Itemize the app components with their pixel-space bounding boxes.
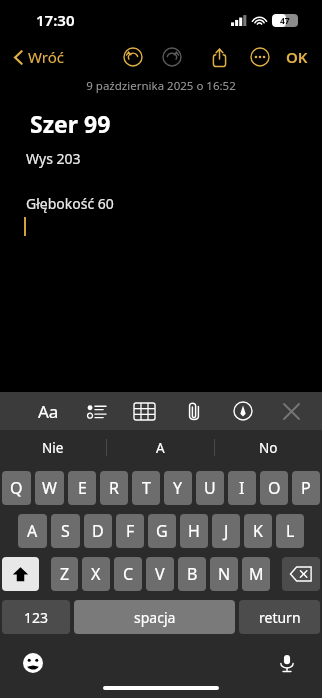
button[interactable]: OK <box>282 42 312 72</box>
button[interactable]: Redo <box>157 42 187 72</box>
staticText: 47 <box>280 15 290 27</box>
staticText: H <box>188 520 200 542</box>
button[interactable]: return <box>239 600 320 634</box>
button[interactable]: 123 <box>2 600 70 634</box>
button[interactable]: Attach <box>169 392 218 430</box>
button[interactable]: No <box>215 430 322 465</box>
button[interactable]: P <box>292 471 320 505</box>
button[interactable]: B <box>178 557 206 591</box>
button[interactable]: Y <box>164 471 192 505</box>
staticText: 9 października 2025 o 16:52 <box>0 78 322 94</box>
staticText: spacja <box>134 608 176 627</box>
staticText: B <box>187 563 198 585</box>
staticText: N <box>218 563 231 585</box>
button[interactable]: G <box>148 514 176 548</box>
staticText: S <box>61 520 70 542</box>
staticText: Szer 99 <box>30 108 111 139</box>
button[interactable]: W <box>35 471 64 505</box>
button[interactable]: Format <box>24 392 72 430</box>
button[interactable]: Shift <box>2 557 39 591</box>
button[interactable]: Table <box>120 392 169 430</box>
staticText: A <box>27 520 38 542</box>
button[interactable]: Close <box>267 392 316 430</box>
staticText: M <box>249 563 264 585</box>
staticText: R <box>109 477 119 499</box>
staticText: G <box>156 520 168 542</box>
staticText: D <box>92 520 104 542</box>
staticText: 123 <box>24 608 49 627</box>
button[interactable]: S <box>51 514 80 548</box>
button[interactable]: I <box>228 471 256 505</box>
button[interactable]: K <box>244 514 272 548</box>
button[interactable]: E <box>68 471 96 505</box>
button[interactable]: Checklist <box>72 392 120 430</box>
button[interactable]: Backspace <box>282 557 320 591</box>
staticText: Wróć <box>28 47 64 67</box>
staticText: O <box>268 477 281 499</box>
button[interactable]: O <box>260 471 288 505</box>
staticText: return <box>259 608 301 627</box>
staticText: Wys 203 <box>26 149 81 168</box>
button[interactable]: A <box>18 514 47 548</box>
staticText: T <box>142 477 151 499</box>
button[interactable]: A <box>107 430 214 465</box>
button[interactable]: H <box>180 514 208 548</box>
button[interactable]: R <box>100 471 128 505</box>
staticText: OK <box>286 47 308 67</box>
staticText: Głębokość 60 <box>26 194 114 213</box>
button[interactable]: Markup <box>218 392 267 430</box>
button[interactable]: L <box>276 514 304 548</box>
staticText: Z <box>60 563 70 585</box>
staticText: U <box>204 477 216 499</box>
button[interactable]: J <box>212 514 240 548</box>
button[interactable]: F <box>116 514 144 548</box>
staticText: Q <box>10 477 23 499</box>
staticText: No <box>259 439 278 457</box>
button[interactable]: Wróć <box>10 43 68 71</box>
staticText: P <box>301 477 311 499</box>
staticText: F <box>126 520 135 542</box>
button[interactable]: N <box>210 557 238 591</box>
button[interactable]: spacja <box>74 600 235 634</box>
staticText: Nie <box>42 439 64 457</box>
staticText: Y <box>173 477 183 499</box>
button[interactable]: Z <box>51 557 78 591</box>
button[interactable]: X <box>82 557 110 591</box>
button[interactable]: Q <box>2 471 31 505</box>
staticText: I <box>239 477 245 499</box>
button[interactable]: Nie <box>0 430 106 465</box>
button[interactable]: More <box>245 42 275 72</box>
button[interactable]: Share <box>204 42 234 72</box>
staticText: A <box>156 439 165 457</box>
button[interactable]: Emoji <box>20 650 46 676</box>
staticText: E <box>78 477 87 499</box>
staticText: L <box>286 520 295 542</box>
staticText: J <box>224 520 229 542</box>
button[interactable]: U <box>196 471 224 505</box>
staticText: 17:30 <box>36 10 75 30</box>
button[interactable]: V <box>146 557 174 591</box>
staticText: W <box>42 477 57 499</box>
button[interactable]: Dictation <box>274 650 300 676</box>
staticText: V <box>155 563 165 585</box>
button[interactable]: Undo <box>118 42 148 72</box>
staticText: C <box>123 563 134 585</box>
staticText: K <box>253 520 263 542</box>
button[interactable]: M <box>242 557 270 591</box>
button[interactable]: C <box>114 557 142 591</box>
staticText: X <box>91 563 101 585</box>
staticText: Aa <box>38 400 59 423</box>
button[interactable]: T <box>132 471 160 505</box>
button[interactable]: D <box>84 514 112 548</box>
